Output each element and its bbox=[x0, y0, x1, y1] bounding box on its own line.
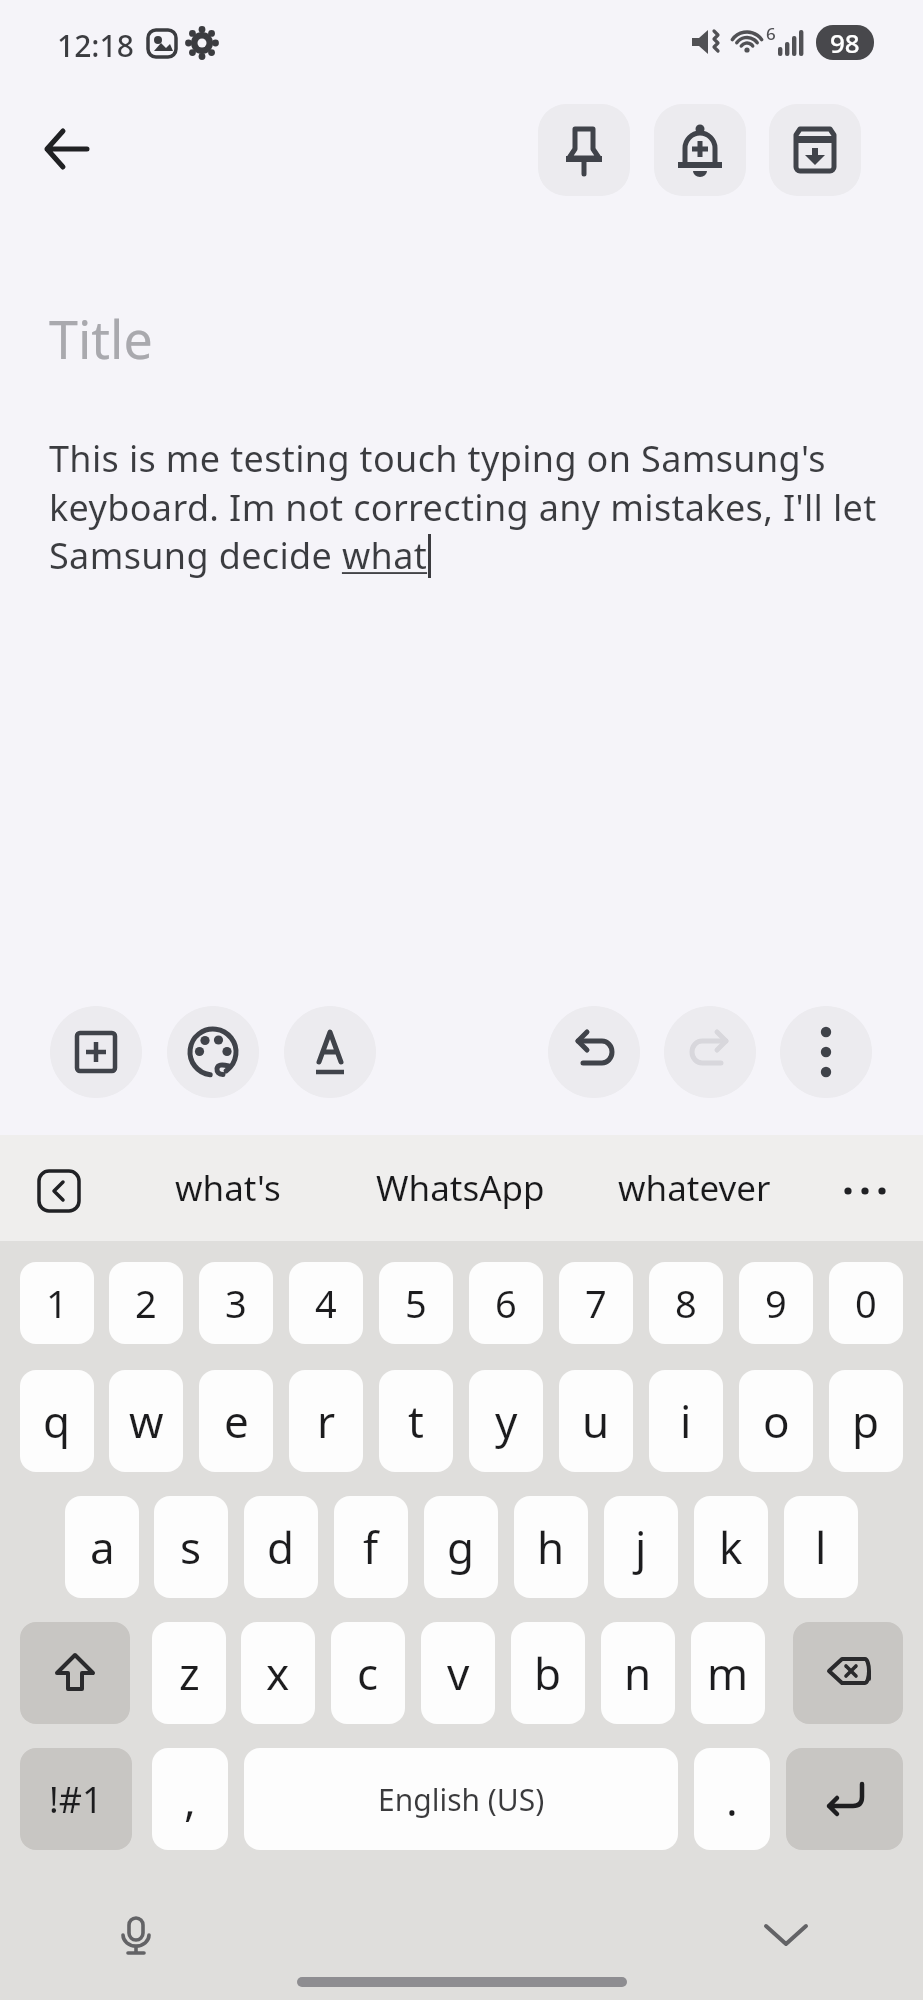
staticText: 9 bbox=[765, 1277, 787, 1329]
button[interactable] bbox=[20, 1622, 130, 1724]
staticText: p bbox=[852, 1391, 880, 1451]
button[interactable]: w bbox=[109, 1370, 183, 1472]
staticText: what's bbox=[175, 1164, 281, 1212]
staticText: This is me testing touch typing on Samsu… bbox=[49, 434, 826, 483]
button[interactable]: n bbox=[601, 1622, 675, 1724]
button[interactable]: j bbox=[604, 1496, 678, 1598]
staticText: m bbox=[707, 1643, 749, 1703]
button[interactable] bbox=[34, 1166, 84, 1216]
button[interactable]: z bbox=[152, 1622, 226, 1724]
button[interactable] bbox=[750, 1900, 822, 1972]
staticText: 6 bbox=[495, 1277, 517, 1329]
button[interactable]: v bbox=[421, 1622, 495, 1724]
button[interactable]: 9 bbox=[739, 1262, 813, 1344]
button[interactable]: f bbox=[334, 1496, 408, 1598]
button[interactable]: 7 bbox=[559, 1262, 633, 1344]
button[interactable]: k bbox=[694, 1496, 768, 1598]
staticText: l bbox=[815, 1517, 827, 1577]
staticText: f bbox=[363, 1517, 379, 1577]
staticText: t bbox=[408, 1391, 424, 1451]
staticText: keyboard. Im not correcting any mistakes… bbox=[49, 483, 877, 532]
button[interactable] bbox=[820, 1160, 910, 1222]
staticText: h bbox=[537, 1517, 565, 1577]
button[interactable]: i bbox=[649, 1370, 723, 1472]
staticText: 3 bbox=[225, 1277, 247, 1329]
button[interactable]: d bbox=[244, 1496, 318, 1598]
staticText: 4 bbox=[315, 1277, 337, 1329]
button[interactable]: WhatsApp bbox=[351, 1147, 570, 1229]
button[interactable] bbox=[654, 104, 746, 196]
button[interactable]: b bbox=[511, 1622, 585, 1724]
button[interactable]: c bbox=[331, 1622, 405, 1724]
staticText: j bbox=[635, 1517, 647, 1577]
button[interactable]: English (US) bbox=[244, 1748, 678, 1850]
staticText: c bbox=[357, 1643, 379, 1703]
button[interactable]: g bbox=[424, 1496, 498, 1598]
button[interactable] bbox=[20, 1748, 132, 1850]
button[interactable]: 3 bbox=[199, 1262, 273, 1344]
staticText: !#1 bbox=[49, 1775, 103, 1824]
staticText: whatever bbox=[618, 1164, 771, 1212]
staticText: 1 bbox=[46, 1277, 68, 1329]
staticText: k bbox=[719, 1517, 743, 1577]
staticText: n bbox=[624, 1643, 652, 1703]
button[interactable]: l bbox=[784, 1496, 858, 1598]
button[interactable]: , bbox=[152, 1748, 228, 1850]
staticText: e bbox=[224, 1391, 249, 1451]
button[interactable] bbox=[30, 112, 104, 186]
button[interactable] bbox=[538, 104, 630, 196]
button[interactable] bbox=[100, 1900, 172, 1972]
button[interactable] bbox=[548, 1006, 640, 1098]
staticText: 98 bbox=[830, 25, 860, 60]
staticText: Title bbox=[49, 303, 153, 374]
staticText: o bbox=[763, 1391, 790, 1451]
staticText: x bbox=[266, 1643, 290, 1703]
button[interactable] bbox=[769, 104, 861, 196]
staticText: u bbox=[582, 1391, 610, 1451]
button[interactable] bbox=[664, 1006, 756, 1098]
button[interactable]: m bbox=[691, 1622, 765, 1724]
staticText: w bbox=[129, 1391, 164, 1451]
staticText: 0 bbox=[855, 1277, 877, 1329]
button[interactable] bbox=[167, 1006, 259, 1098]
button[interactable]: p bbox=[829, 1370, 903, 1472]
staticText: 12:18 bbox=[57, 25, 134, 66]
button[interactable] bbox=[50, 1006, 142, 1098]
button[interactable] bbox=[793, 1622, 903, 1724]
staticText: English (US) bbox=[378, 1779, 545, 1820]
staticText: z bbox=[179, 1643, 200, 1703]
button[interactable]: a bbox=[65, 1496, 139, 1598]
button[interactable]: what's bbox=[126, 1147, 330, 1229]
staticText: d bbox=[267, 1517, 295, 1577]
button[interactable]: r bbox=[289, 1370, 363, 1472]
button[interactable]: 1 bbox=[20, 1262, 94, 1344]
staticText: Samsung decide what bbox=[49, 531, 428, 580]
staticText: a bbox=[90, 1517, 115, 1577]
button[interactable]: 0 bbox=[829, 1262, 903, 1344]
staticText: q bbox=[43, 1391, 71, 1451]
button[interactable]: e bbox=[199, 1370, 273, 1472]
button[interactable]: 5 bbox=[379, 1262, 453, 1344]
button[interactable]: 8 bbox=[649, 1262, 723, 1344]
staticText: , bbox=[184, 1769, 196, 1829]
button[interactable] bbox=[786, 1748, 903, 1850]
button[interactable]: u bbox=[559, 1370, 633, 1472]
button[interactable]: s bbox=[154, 1496, 228, 1598]
button[interactable] bbox=[780, 1006, 872, 1098]
button[interactable]: t bbox=[379, 1370, 453, 1472]
button[interactable]: q bbox=[20, 1370, 94, 1472]
staticText: 8 bbox=[675, 1277, 697, 1329]
button[interactable]: o bbox=[739, 1370, 813, 1472]
button[interactable]: . bbox=[694, 1748, 770, 1850]
button[interactable]: 2 bbox=[109, 1262, 183, 1344]
button[interactable]: h bbox=[514, 1496, 588, 1598]
button[interactable] bbox=[284, 1006, 376, 1098]
staticText: 5 bbox=[405, 1277, 427, 1329]
button[interactable]: 4 bbox=[289, 1262, 363, 1344]
button[interactable]: y bbox=[469, 1370, 543, 1472]
button[interactable]: whatever bbox=[587, 1147, 801, 1229]
button[interactable]: 6 bbox=[469, 1262, 543, 1344]
button[interactable]: x bbox=[241, 1622, 315, 1724]
staticText: . bbox=[726, 1769, 738, 1829]
staticText: 6 bbox=[766, 22, 776, 45]
